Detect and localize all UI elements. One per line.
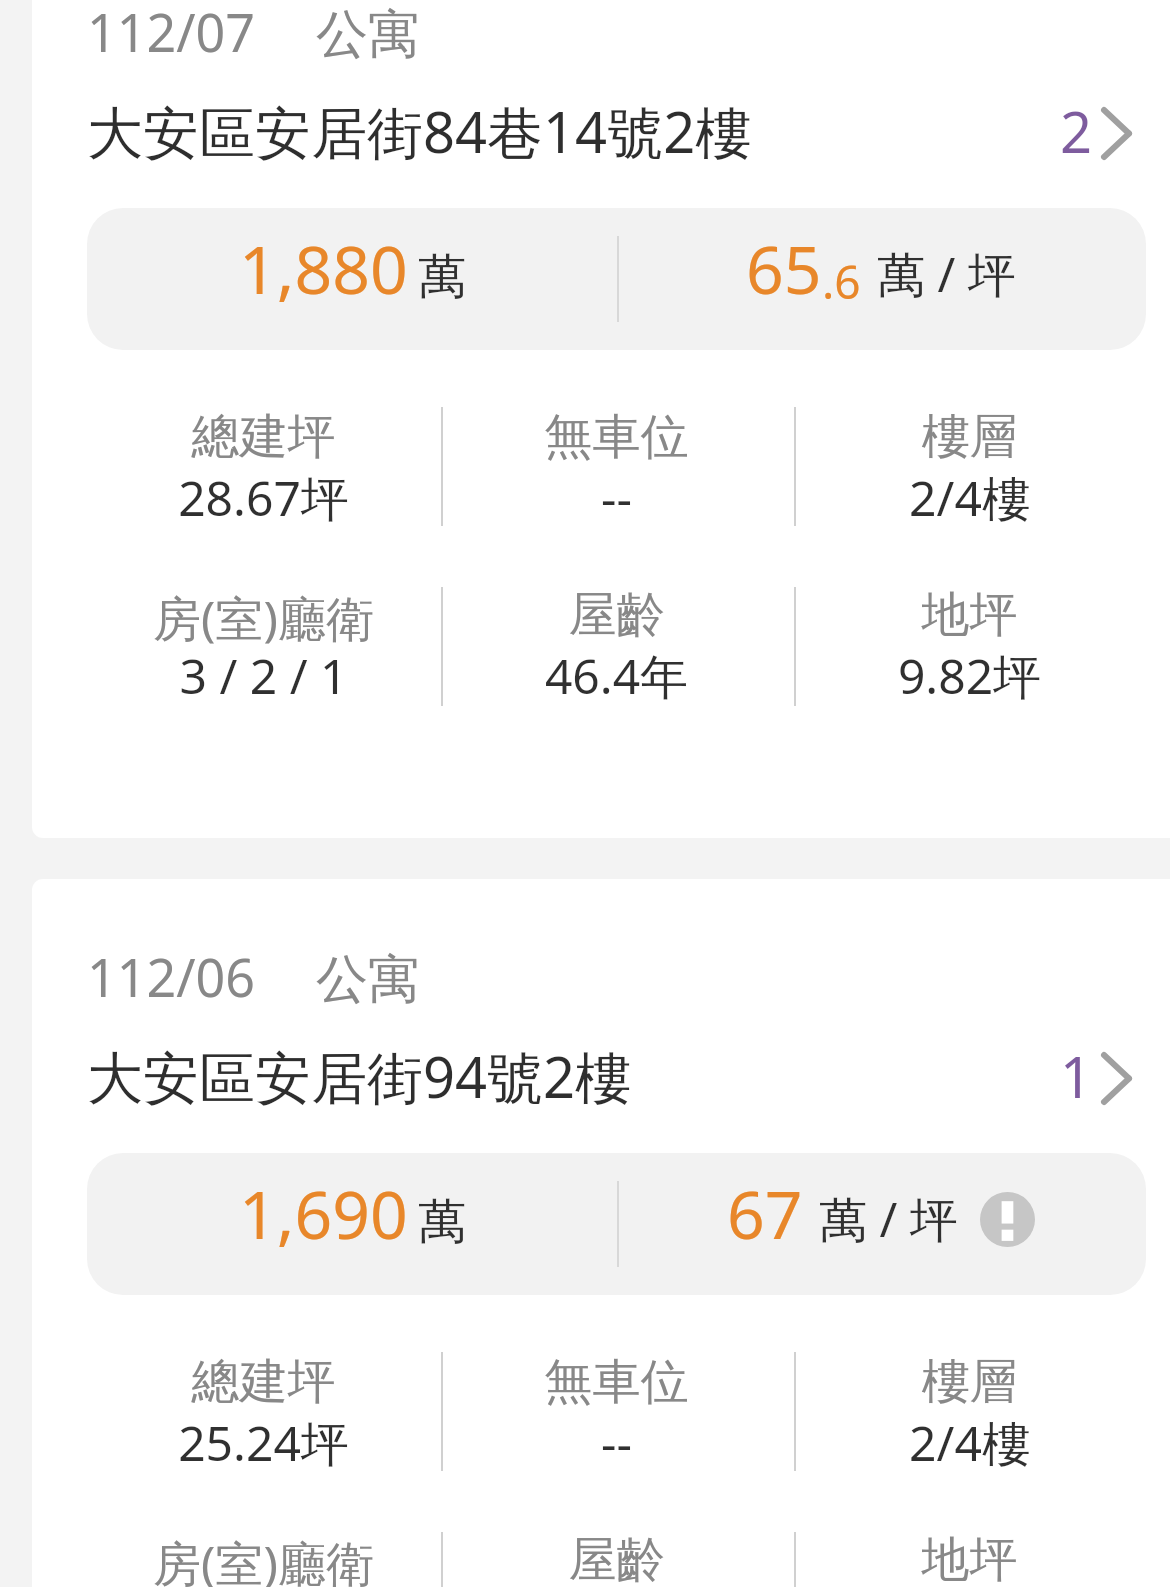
staticText: 大安區安居街94號2樓 xyxy=(87,1038,632,1114)
button[interactable]: 屋齡 xyxy=(440,1532,793,1587)
staticText: 25.24坪 xyxy=(87,1410,440,1476)
button[interactable]: Open transaction history xyxy=(1060,1038,1131,1114)
staticText: 大安區安居街84巷14號2樓 xyxy=(87,93,752,169)
staticText: 房(室)廳衛 xyxy=(87,585,440,651)
staticText: 地坪 xyxy=(793,1530,1146,1587)
staticText: 萬 xyxy=(418,1192,466,1252)
staticText: 1 xyxy=(1060,1038,1093,1114)
staticText: 2/4樓 xyxy=(793,465,1146,531)
button[interactable]: 房(室)廳衛 xyxy=(87,587,440,706)
staticText: 112/06 xyxy=(87,941,256,1012)
button[interactable]: Price note xyxy=(980,1192,1035,1247)
staticText: 地坪 xyxy=(793,585,1146,645)
staticText: -- xyxy=(440,1410,793,1475)
button[interactable]: 112/07 xyxy=(32,0,1170,838)
button[interactable]: 1,880 xyxy=(87,208,1146,350)
staticText: 28.67坪 xyxy=(87,465,440,531)
staticText: 2/4樓 xyxy=(793,1410,1146,1476)
button[interactable]: 總建坪 xyxy=(87,1352,440,1471)
staticText: 46.4年 xyxy=(440,643,793,709)
button[interactable]: 地坪 xyxy=(793,587,1146,706)
staticText: 公寓 xyxy=(316,947,420,1013)
staticText: 1,690 xyxy=(239,1168,408,1258)
button[interactable]: Open transaction history xyxy=(1060,93,1131,169)
staticText: 屋齡 xyxy=(440,1530,793,1587)
button[interactable]: 地坪 xyxy=(793,1532,1146,1587)
staticText: 樓層 xyxy=(793,407,1146,467)
staticText: 總建坪 xyxy=(87,1352,440,1412)
staticText: 2 xyxy=(1060,93,1093,169)
button[interactable]: 總建坪 xyxy=(87,407,440,526)
staticText: 樓層 xyxy=(793,1352,1146,1412)
button[interactable]: 樓層 xyxy=(793,1352,1146,1471)
staticText: 1,880 xyxy=(239,223,408,313)
staticText: -- xyxy=(440,465,793,530)
staticText: 萬 xyxy=(418,247,466,307)
staticText: 112/07 xyxy=(87,0,256,67)
staticText: 公寓 xyxy=(316,2,420,68)
staticText: 無車位 xyxy=(440,1352,793,1412)
button[interactable]: 112/06 xyxy=(32,879,1170,1587)
button[interactable]: 屋齡 xyxy=(440,587,793,706)
button[interactable]: 無車位 xyxy=(440,407,793,526)
staticText: 萬 / 坪 xyxy=(819,1186,958,1252)
staticText: 房(室)廳衛 xyxy=(87,1530,440,1587)
button[interactable]: 樓層 xyxy=(793,407,1146,526)
staticText: 65 xyxy=(746,223,822,313)
staticText: 3 / 2 / 1 xyxy=(87,643,440,708)
staticText: 無車位 xyxy=(440,407,793,467)
button[interactable]: 房(室)廳衛 xyxy=(87,1532,440,1587)
staticText: 屋齡 xyxy=(440,585,793,645)
staticText: 總建坪 xyxy=(87,407,440,467)
staticText: 67 xyxy=(727,1168,803,1258)
staticText: 9.82坪 xyxy=(793,643,1146,709)
button[interactable]: 無車位 xyxy=(440,1352,793,1471)
button[interactable]: 1,690 xyxy=(87,1153,1146,1295)
staticText: .6 xyxy=(822,250,861,313)
staticText: 萬 / 坪 xyxy=(877,241,1016,307)
